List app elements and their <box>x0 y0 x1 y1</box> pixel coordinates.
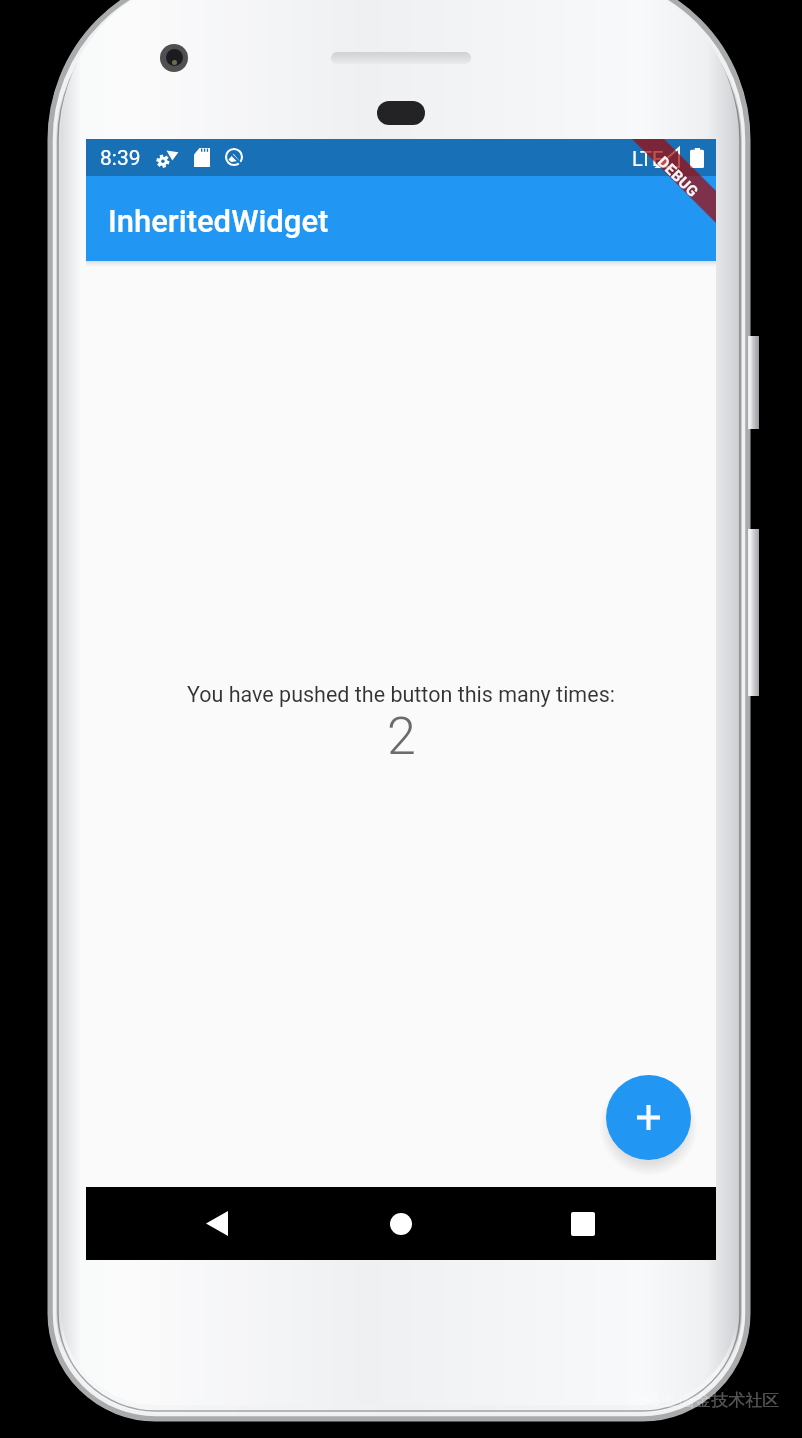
button[interactable]: Home <box>374 1197 427 1250</box>
staticText: DEBUG <box>654 153 702 201</box>
staticText: You have pushed the button this many tim… <box>187 682 615 707</box>
button[interactable]: Recents <box>556 1197 609 1250</box>
staticText: 8:39 <box>100 146 141 171</box>
staticText: 2 <box>387 706 416 767</box>
staticText: @稀土掘金技术社区 <box>628 1390 780 1411</box>
staticText: InheritedWidget <box>108 203 329 239</box>
button[interactable]: Increment <box>606 1075 691 1160</box>
button[interactable]: Back <box>190 1197 243 1250</box>
staticText: LTE <box>632 147 664 170</box>
